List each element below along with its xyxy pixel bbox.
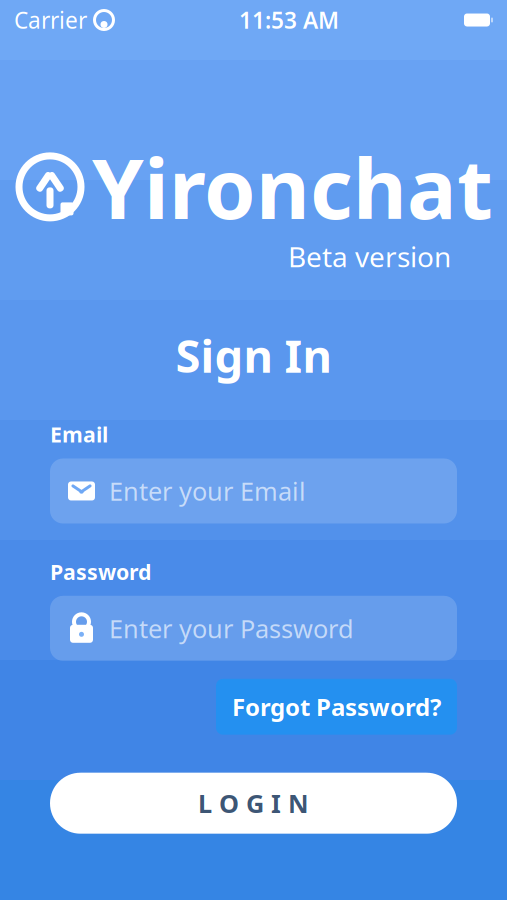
button[interactable]: Enter your Email bbox=[50, 458, 457, 523]
staticText: Password bbox=[50, 557, 151, 586]
button[interactable]: Enter your Password bbox=[50, 596, 457, 661]
staticText: L O G I N bbox=[198, 786, 309, 820]
staticText: Enter your Email bbox=[109, 474, 306, 508]
staticText: Enter your Password bbox=[109, 611, 354, 645]
staticText: Carrier bbox=[14, 5, 87, 35]
staticText: Forgot Password? bbox=[232, 691, 441, 723]
staticText: Email bbox=[50, 420, 108, 448]
staticText: Yironchat bbox=[92, 132, 493, 242]
button[interactable]: Forgot Password? bbox=[216, 679, 457, 735]
staticText: Beta version bbox=[288, 238, 451, 275]
button[interactable]: L O G I N bbox=[50, 773, 457, 834]
staticText: 11:53 AM bbox=[239, 5, 339, 35]
staticText: Sign In bbox=[175, 325, 331, 385]
